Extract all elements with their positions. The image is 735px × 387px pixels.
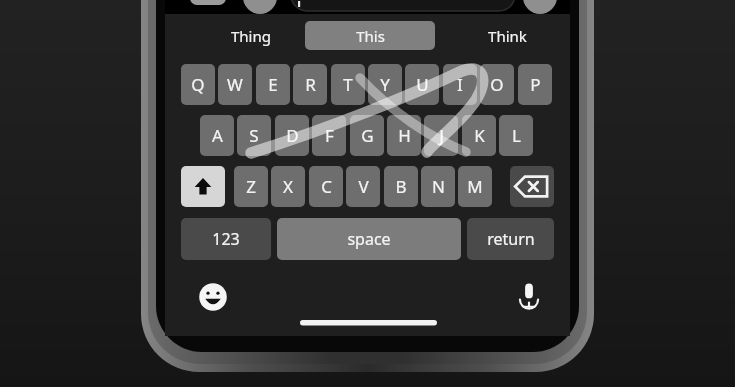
button[interactable]: space	[277, 218, 461, 260]
staticText: Y	[380, 73, 390, 96]
staticText: W	[227, 73, 243, 96]
staticText: U	[416, 73, 429, 96]
button[interactable]: V	[346, 166, 380, 207]
button[interactable]: S	[237, 115, 271, 156]
button[interactable]: G	[350, 115, 384, 156]
button[interactable]: A	[200, 115, 234, 156]
staticText: P	[530, 73, 541, 96]
button[interactable]: I	[443, 64, 477, 105]
staticText: G	[361, 124, 374, 147]
button[interactable]: U	[405, 64, 439, 105]
button[interactable]: N	[421, 166, 455, 207]
button[interactable]: Dictation	[514, 280, 544, 314]
staticText: V	[358, 175, 369, 198]
staticText: T	[343, 73, 353, 96]
button[interactable]: Think	[468, 22, 546, 50]
button[interactable]: L	[499, 115, 533, 156]
button[interactable]: K	[462, 115, 496, 156]
staticText: space	[347, 228, 391, 250]
staticText: B	[395, 175, 407, 198]
staticText: I	[457, 73, 463, 96]
staticText: A	[212, 124, 223, 147]
staticText: R	[305, 73, 316, 96]
button[interactable]: Thing	[212, 22, 290, 50]
button[interactable]: Backspace	[510, 166, 554, 207]
staticText: Think	[488, 26, 527, 46]
staticText: S	[249, 124, 259, 147]
staticText: L	[512, 124, 521, 147]
button[interactable]: E	[256, 64, 290, 105]
button[interactable]: D	[275, 115, 309, 156]
button[interactable]: C	[309, 166, 343, 207]
button[interactable]: O	[480, 64, 514, 105]
staticText: M	[467, 175, 483, 198]
staticText: F	[325, 124, 334, 147]
staticText: J	[439, 124, 444, 147]
staticText: O	[490, 73, 504, 96]
button[interactable]: H	[387, 115, 421, 156]
staticText: X	[283, 175, 293, 198]
staticText: This	[356, 26, 385, 46]
button[interactable]: return	[467, 218, 554, 260]
button[interactable]: Emoji keyboard	[198, 282, 228, 312]
button[interactable]: This	[305, 21, 435, 50]
button[interactable]: B	[384, 166, 418, 207]
staticText: Q	[191, 73, 205, 96]
staticText: Thing	[231, 26, 271, 46]
button[interactable]: J	[424, 115, 458, 156]
button[interactable]: Q	[181, 64, 215, 105]
button[interactable]: Shift	[181, 166, 225, 207]
button[interactable]: Y	[368, 64, 402, 105]
button[interactable]: P	[518, 64, 552, 105]
staticText: K	[474, 124, 485, 147]
staticText: return	[487, 228, 535, 250]
staticText: 123	[212, 228, 240, 250]
button[interactable]: T	[331, 64, 365, 105]
button[interactable]: M	[458, 166, 492, 207]
staticText: E	[268, 73, 278, 96]
staticText: Z	[246, 175, 256, 198]
staticText: C	[321, 175, 332, 198]
staticText: N	[432, 175, 445, 198]
staticText: D	[286, 124, 299, 147]
button[interactable]: F	[312, 115, 346, 156]
button[interactable]: 123	[181, 218, 271, 260]
button[interactable]: Z	[234, 166, 268, 207]
button[interactable]: W	[218, 64, 252, 105]
staticText: H	[398, 124, 411, 147]
button[interactable]: X	[271, 166, 305, 207]
button[interactable]: R	[293, 64, 327, 105]
